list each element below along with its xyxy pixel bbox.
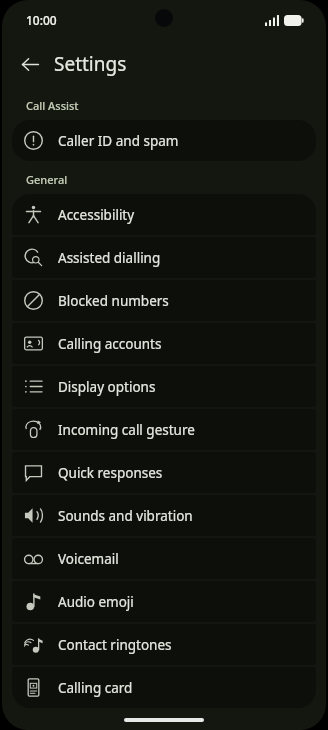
staticText: Voicemail: [58, 550, 119, 568]
button[interactable]: Sounds and vibration: [12, 495, 316, 536]
button[interactable]: Voicemail: [12, 538, 316, 579]
staticText: Calling card: [58, 679, 133, 697]
staticText: Display options: [58, 378, 156, 396]
staticText: General: [26, 172, 68, 187]
staticText: Settings: [54, 51, 127, 77]
button[interactable]: Contact ringtones: [12, 624, 316, 665]
button[interactable]: Display options: [12, 366, 316, 407]
button[interactable]: Quick responses: [12, 452, 316, 493]
staticText: Caller ID and spam: [58, 132, 179, 150]
button[interactable]: Calling accounts: [12, 323, 316, 364]
button[interactable]: Incoming call gesture: [12, 409, 316, 450]
button[interactable]: Assisted dialling: [12, 237, 316, 278]
staticText: Incoming call gesture: [58, 421, 195, 439]
staticText: Audio emoji: [58, 593, 134, 611]
staticText: Quick responses: [58, 464, 163, 482]
staticText: 10:00: [26, 12, 57, 28]
staticText: Contact ringtones: [58, 636, 172, 654]
staticText: Accessibility: [58, 206, 135, 224]
button[interactable]: Blocked numbers: [12, 280, 316, 321]
button[interactable]: Accessibility: [12, 194, 316, 235]
staticText: Sounds and vibration: [58, 507, 193, 525]
staticText: Calling accounts: [58, 335, 162, 353]
button[interactable]: Back: [10, 44, 50, 84]
button[interactable]: Caller ID and spam: [12, 120, 316, 161]
staticText: Blocked numbers: [58, 292, 169, 310]
button[interactable]: Audio emoji: [12, 581, 316, 622]
button[interactable]: Calling card: [12, 667, 316, 708]
staticText: Assisted dialling: [58, 249, 161, 267]
staticText: Call Assist: [26, 98, 79, 113]
